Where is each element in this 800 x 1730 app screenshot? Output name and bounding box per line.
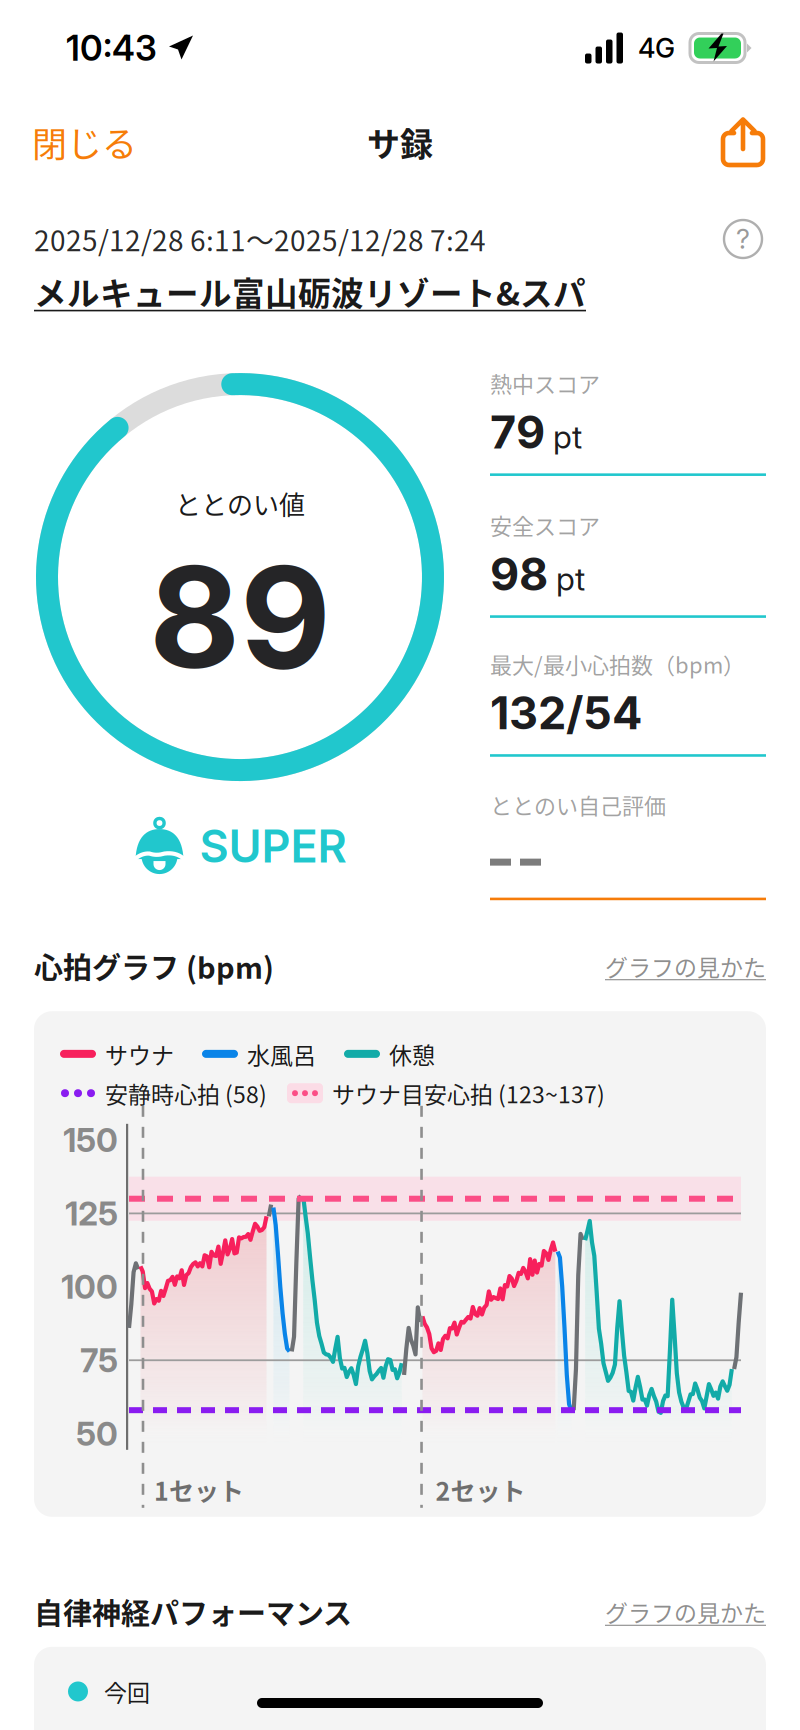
staticText: 98 [490,547,548,601]
staticText: 1セット [154,1472,244,1508]
staticText: 安全スコア [490,509,600,541]
button[interactable]: グラフの見かた [605,950,766,983]
staticText: サ録 [367,118,433,166]
staticText: pt [556,559,585,598]
staticText: 自律神経パフォーマンス [34,1591,352,1633]
staticText: 今回 [104,1675,150,1708]
button[interactable]: Share [698,110,800,174]
staticText: 熱中スコア [490,367,600,399]
staticText: 100 [61,1267,118,1307]
staticText: 2セット [435,1472,525,1508]
staticText: 最大/最小心拍数（bpm） [490,648,745,680]
staticText: ? [736,223,750,255]
staticText: pt [553,417,582,456]
button[interactable]: 閉じる [0,103,159,181]
staticText: 89 [149,532,331,702]
staticText: 50 [76,1414,118,1454]
staticText: 132/54 [490,686,642,740]
staticText: 75 [80,1340,118,1380]
staticText: ととのい値 [175,484,305,522]
staticText: SUPER [199,819,346,873]
button[interactable]: メルキュール富山砺波リゾート&スパ [34,268,586,315]
staticText: 79 [490,405,545,459]
staticText: グラフの見かた [605,950,766,983]
button[interactable]: グラフの見かた [605,1595,766,1628]
staticText: グラフの見かた [605,1595,766,1628]
staticText: サウナ [105,1037,174,1070]
staticText: ととのい自己評価 [490,789,666,821]
staticText: 2025/12/28 6:11〜2025/12/28 7:24 [34,219,486,259]
staticText: 安静時心拍 (58) [105,1076,267,1110]
staticText: 4G [638,32,675,64]
staticText: サウナ目安心拍 (123~137) [332,1076,605,1110]
staticText: 水風呂 [247,1037,316,1070]
staticText: 閉じる [32,117,137,167]
staticText: 10:43 [66,27,157,69]
staticText: 125 [65,1193,118,1233]
staticText: 150 [63,1120,118,1160]
staticText: 心拍グラフ (bpm) [34,945,274,987]
staticText: メルキュール富山砺波リゾート&スパ [34,268,586,315]
button[interactable]: Help [720,216,766,262]
staticText: 休憩 [389,1037,435,1070]
